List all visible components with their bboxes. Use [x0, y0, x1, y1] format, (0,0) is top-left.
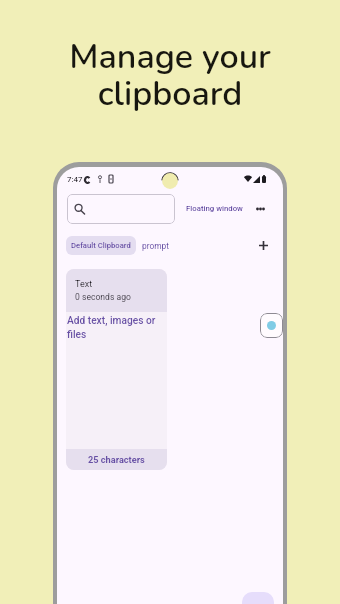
- button[interactable]: prompt: [138, 236, 174, 255]
- staticText: 7:47: [67, 175, 83, 184]
- staticText: Floating window: [186, 204, 243, 213]
- button[interactable]: Text: [66, 269, 167, 470]
- staticText: prompt: [142, 241, 170, 251]
- button[interactable]: New clip: [242, 592, 274, 604]
- staticText: Add text, images or files: [67, 315, 166, 341]
- button[interactable]: Floating window: [183, 201, 246, 216]
- button[interactable]: More options: [250, 199, 270, 219]
- button[interactable]: Search: [67, 194, 175, 224]
- button[interactable]: Add clipboard: [253, 235, 273, 255]
- staticText: 0 seconds ago: [75, 292, 131, 302]
- staticText: Default Clipboard: [71, 241, 131, 250]
- staticText: Text: [75, 279, 93, 290]
- staticText: 25 characters: [88, 454, 145, 465]
- button[interactable]: Default Clipboard: [66, 236, 136, 255]
- button[interactable]: Floating window handle: [260, 313, 283, 338]
- staticText: Manage your clipboard: [0, 34, 340, 117]
